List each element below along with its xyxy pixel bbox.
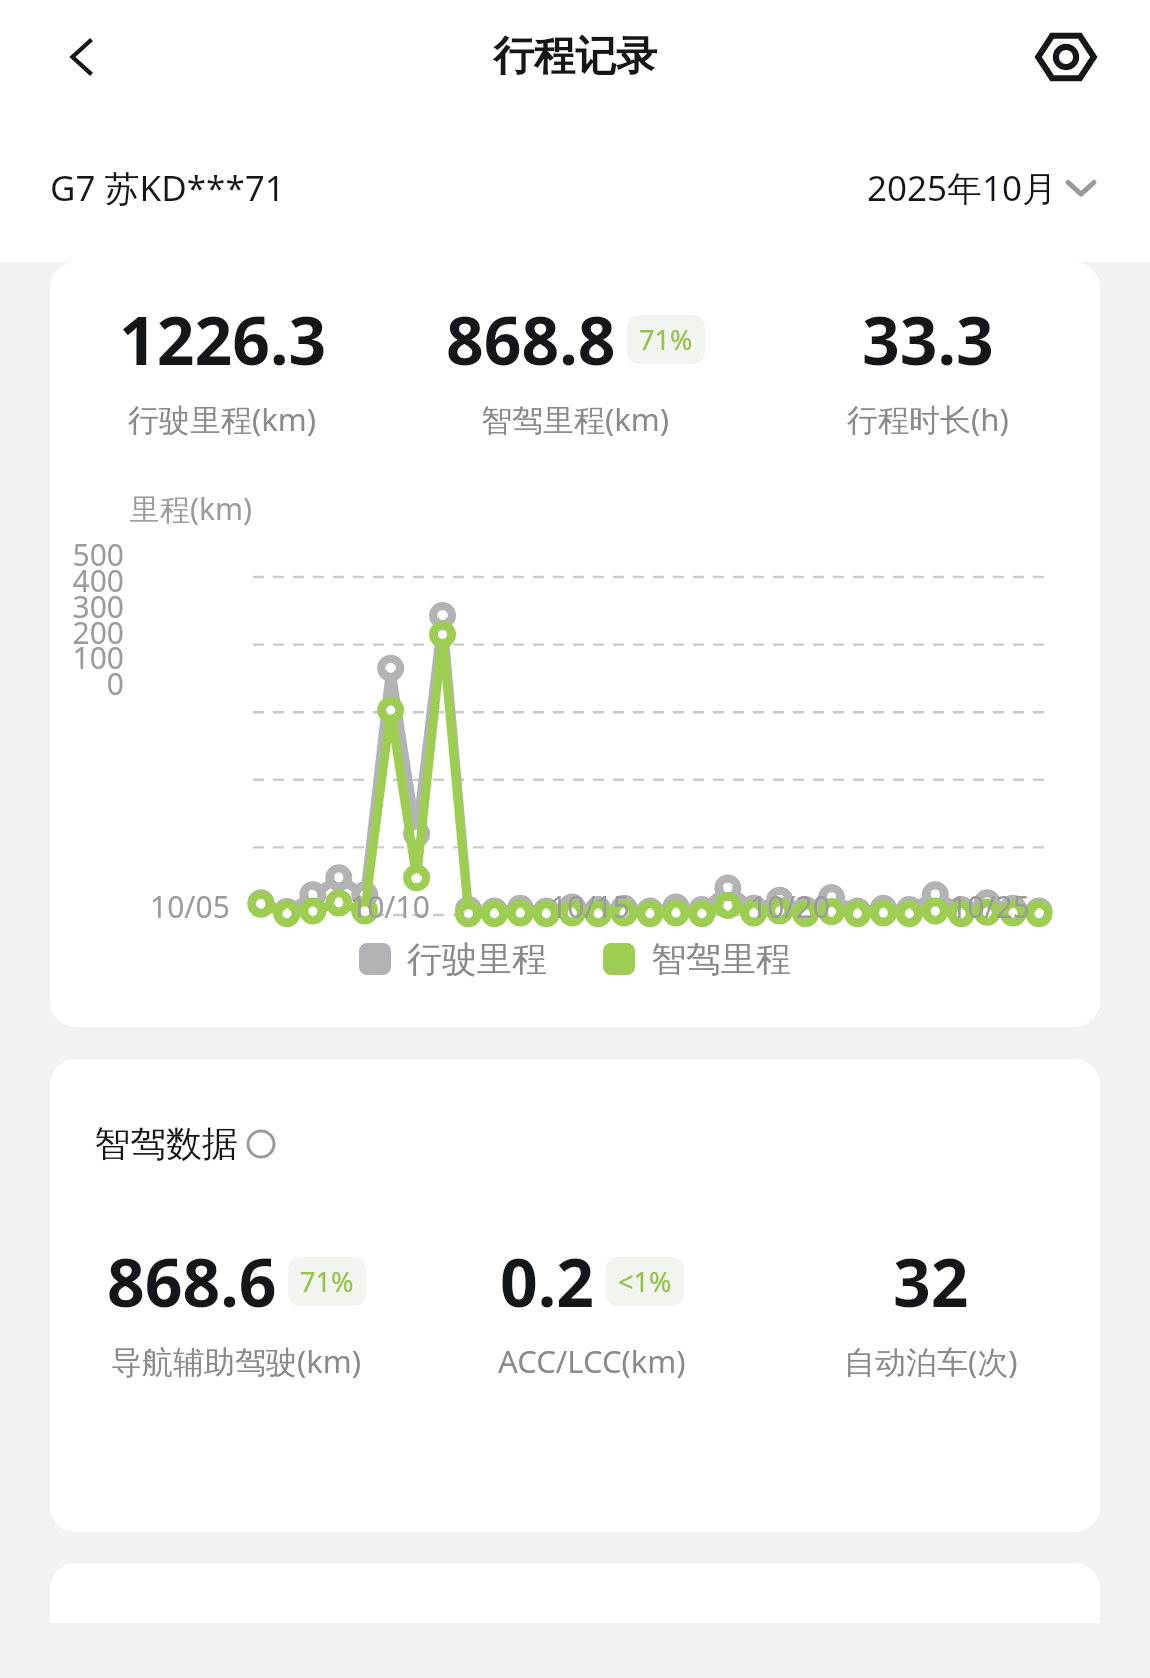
staticText: 33.3	[862, 294, 994, 384]
staticText: 智驾里程(km)	[481, 398, 670, 440]
staticText: 10/20	[750, 886, 830, 927]
staticText: 0	[50, 663, 124, 704]
staticText: 500	[50, 534, 124, 575]
staticText: 智驾数据	[94, 1121, 238, 1166]
staticText: G7 苏KD***71	[50, 164, 285, 212]
staticText: ACC/LCC(km)	[498, 1340, 686, 1382]
staticText: 10/05	[150, 886, 230, 927]
staticText: 200	[50, 612, 124, 653]
button[interactable]: Back	[46, 21, 118, 93]
button[interactable]: 2025年10月	[861, 158, 1100, 218]
staticText: 0.2	[500, 1236, 595, 1326]
staticText: 智驾里程	[651, 937, 791, 981]
staticText: 10/15	[550, 886, 630, 927]
staticText: 2025年10月	[867, 164, 1058, 212]
staticText: 100	[50, 637, 124, 678]
staticText: 32	[893, 1236, 969, 1326]
button[interactable]: 智驾里程	[599, 933, 795, 985]
staticText: 10/10	[350, 886, 430, 927]
staticText: 行驶里程(km)	[128, 398, 317, 440]
staticText: 868.6	[107, 1236, 277, 1326]
staticText: 行程时长(h)	[847, 398, 1009, 440]
staticText: 71%	[639, 321, 693, 358]
staticText: 300	[50, 586, 124, 627]
button[interactable]: 智驾数据	[90, 1117, 280, 1170]
button[interactable]: Settings	[1028, 19, 1104, 95]
staticText: 1226.3	[119, 294, 327, 384]
staticText: 868.8	[446, 294, 616, 384]
staticText: 导航辅助驾驶(km)	[111, 1340, 362, 1382]
staticText: <1%	[618, 1263, 672, 1300]
staticText: 行程记录	[493, 31, 657, 83]
staticText: 里程(km)	[130, 488, 253, 529]
button[interactable]: 行驶里程	[355, 933, 551, 985]
staticText: 400	[50, 560, 124, 601]
staticText: 行驶里程	[407, 937, 547, 981]
staticText: 10/25	[950, 886, 1030, 927]
staticText: 自动泊车(次)	[844, 1340, 1018, 1382]
staticText: 71%	[300, 1263, 354, 1300]
